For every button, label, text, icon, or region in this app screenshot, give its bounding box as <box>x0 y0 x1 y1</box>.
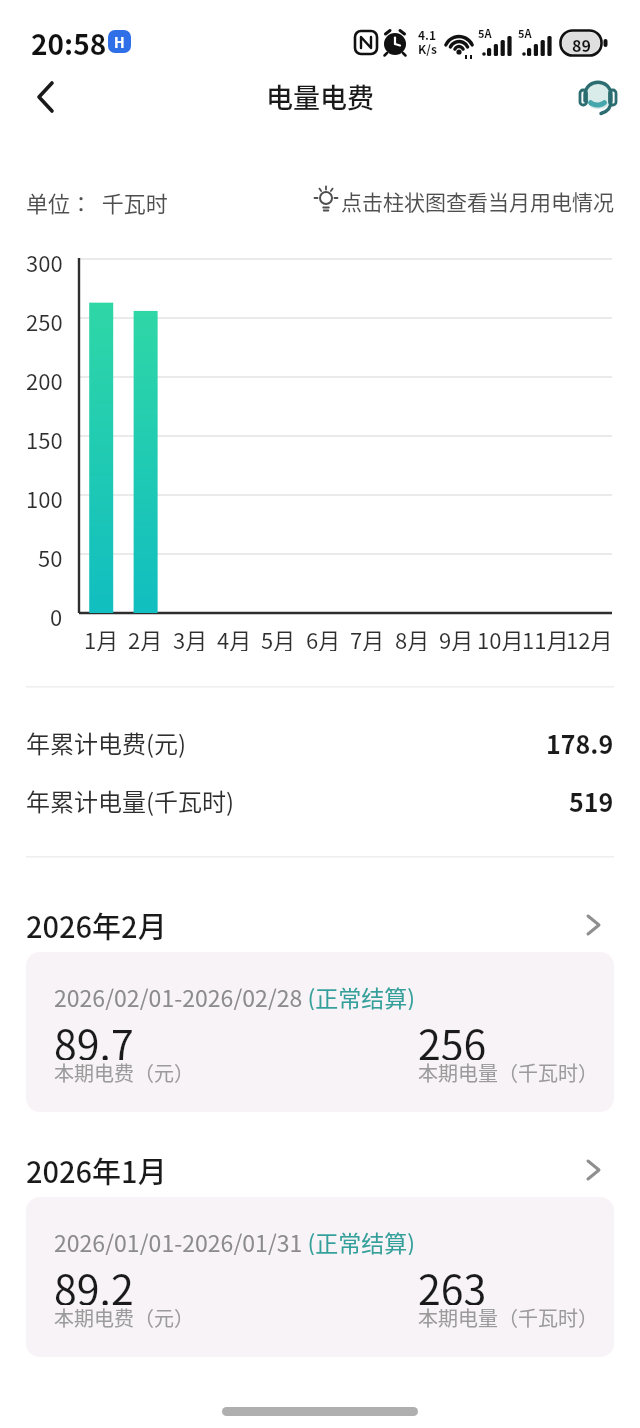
staticText: 89.2 <box>54 1257 134 1305</box>
staticText: 年累计电量(千瓦时) <box>26 783 235 817</box>
staticText: 519 <box>569 783 614 817</box>
staticText: 5A <box>518 25 532 39</box>
staticText: 12月 <box>566 623 613 651</box>
staticText: 89.7 <box>54 1012 134 1060</box>
staticText: 8月 <box>395 623 430 651</box>
staticText: 263 <box>418 1257 487 1305</box>
staticText: 11月 <box>522 623 569 651</box>
staticText: 5A <box>478 25 492 39</box>
staticText: 电量电费 <box>266 77 374 116</box>
staticText: 150 <box>26 423 63 449</box>
staticText: 3月 <box>173 623 208 651</box>
button[interactable]: 年累计电费(元) <box>26 714 614 770</box>
staticText: 本期电量（千瓦时） <box>418 1303 598 1331</box>
staticText: 50 <box>38 541 63 567</box>
button[interactable] <box>26 1197 614 1357</box>
staticText: H <box>114 32 125 52</box>
button[interactable]: 2026年1月 <box>26 1145 614 1195</box>
button[interactable]: 2026年2月 <box>26 900 614 950</box>
staticText: 点击柱状图查看当月用电情况 <box>341 186 614 216</box>
staticText: 250 <box>26 305 63 331</box>
button[interactable] <box>24 72 74 122</box>
staticText: 2026年2月 <box>26 904 167 946</box>
button[interactable] <box>572 70 626 124</box>
staticText: 20:58 <box>31 23 107 59</box>
staticText: 年累计电费(元) <box>26 725 187 759</box>
staticText: 89 <box>572 33 591 53</box>
staticText: 1月 <box>84 623 119 651</box>
staticText: 本期电费（元） <box>54 1303 194 1331</box>
staticText: 2026年1月 <box>26 1149 167 1191</box>
button[interactable]: 点击柱状图查看当月用电情况 <box>306 181 614 221</box>
staticText: 0 <box>50 600 63 626</box>
staticText: 5月 <box>261 623 296 651</box>
staticText: 7月 <box>350 623 385 651</box>
staticText: 2026/01/01-2026/01/31 (正常结算) <box>54 1225 415 1255</box>
button[interactable]: 年累计电量(千瓦时) <box>26 772 614 828</box>
button[interactable] <box>26 952 614 1112</box>
staticText: 300 <box>26 246 63 272</box>
staticText: 6月 <box>306 623 341 651</box>
staticText: 256 <box>418 1012 487 1060</box>
staticText: 2026/02/01-2026/02/28 (正常结算) <box>54 980 415 1010</box>
staticText: 9月 <box>439 623 474 651</box>
staticText: 2月 <box>128 623 163 651</box>
staticText: 单位： 千瓦时 <box>26 186 168 216</box>
staticText: 200 <box>26 364 63 390</box>
staticText: 100 <box>26 482 63 508</box>
staticText: 4月 <box>217 623 252 651</box>
staticText: 本期电费（元） <box>54 1058 194 1086</box>
staticText: 10月 <box>477 623 524 651</box>
staticText: 本期电量（千瓦时） <box>418 1058 598 1086</box>
staticText: 4.1 <box>418 26 437 42</box>
staticText: K/s <box>418 40 437 56</box>
staticText: 178.9 <box>546 725 614 759</box>
